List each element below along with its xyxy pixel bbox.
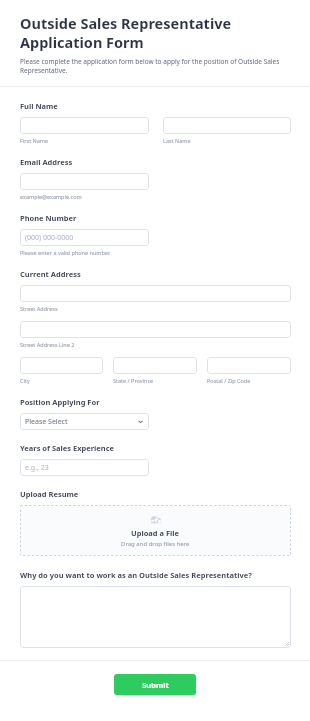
button[interactable]: (000) 000-0000: [20, 229, 149, 246]
staticText: Upload a File: [131, 528, 180, 538]
staticText: First Name: [20, 137, 49, 144]
button[interactable]: [20, 321, 291, 338]
staticText: Drag and drop files here: [121, 540, 190, 548]
staticText: Last Name: [163, 137, 191, 144]
button[interactable]: [20, 173, 149, 190]
staticText: Postal / Zip Code: [207, 377, 251, 384]
button[interactable]: [20, 357, 103, 374]
button[interactable]: Submit: [114, 674, 196, 695]
staticText: Street Address: [20, 305, 58, 312]
staticText: Please Select: [25, 417, 68, 427]
staticText: Please enter a valid phone number.: [20, 249, 111, 256]
staticText: Please complete the application form bel…: [20, 57, 296, 75]
button[interactable]: Upload a file: [20, 505, 291, 556]
button[interactable]: [113, 357, 197, 374]
staticText: Current Address: [20, 269, 81, 279]
button[interactable]: e.g., 23: [20, 459, 149, 476]
staticText: State / Province: [113, 377, 154, 384]
button[interactable]: [163, 117, 291, 134]
button[interactable]: [20, 285, 291, 302]
staticText: Outside Sales Representative Application…: [20, 13, 296, 52]
staticText: Years of Sales Experience: [20, 443, 114, 453]
staticText: Email Address: [20, 157, 73, 167]
staticText: Submit: [142, 680, 169, 690]
staticText: e.g., 23: [25, 463, 49, 473]
staticText: (000) 000-0000: [25, 233, 74, 243]
button[interactable]: [20, 117, 149, 134]
button[interactable]: [207, 357, 291, 374]
staticText: Full Name: [20, 101, 58, 111]
staticText: Upload Resume: [20, 489, 79, 499]
staticText: Street Address Line 2: [20, 341, 75, 348]
staticText: Phone Number: [20, 213, 77, 223]
staticText: Position Applying For: [20, 397, 100, 407]
staticText: Why do you want to work as an Outside Sa…: [20, 570, 252, 580]
staticText: example@example.com: [20, 193, 82, 200]
button[interactable]: Please Select: [20, 413, 149, 430]
button[interactable]: [20, 586, 291, 648]
staticText: City: [20, 377, 30, 384]
